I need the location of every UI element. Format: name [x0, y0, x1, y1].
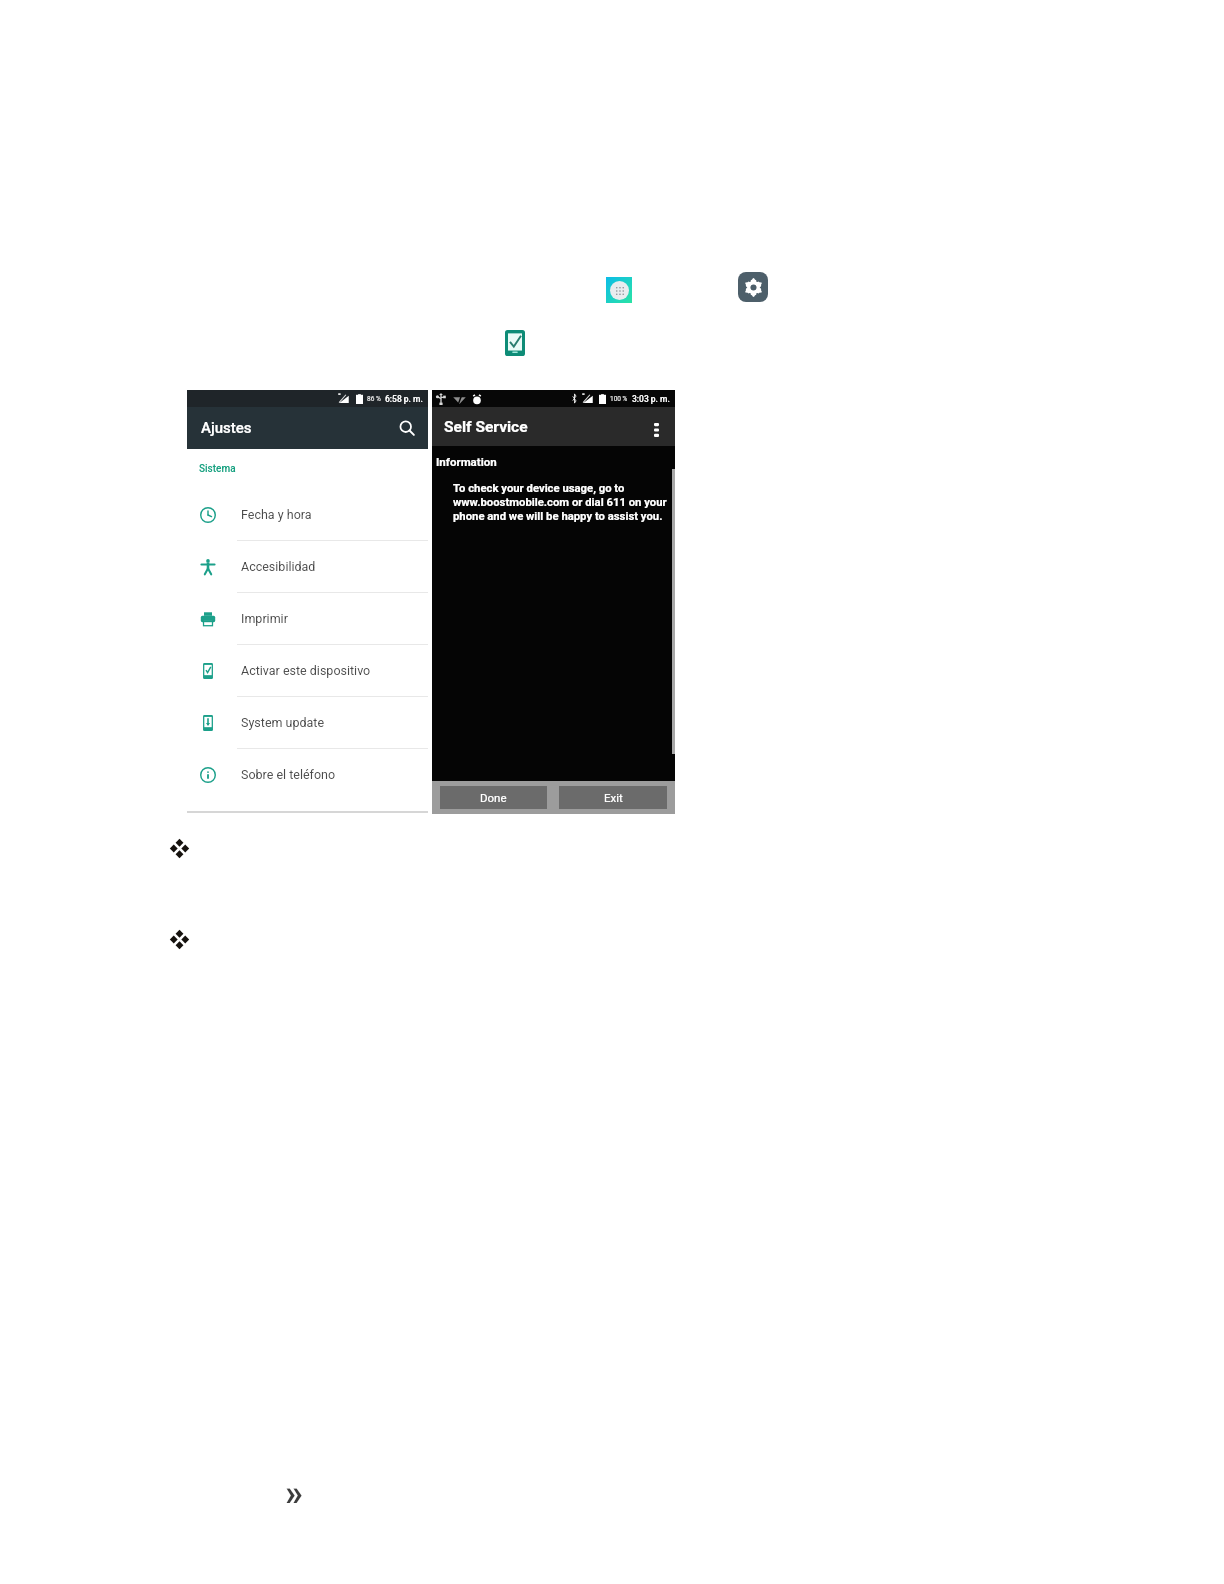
staticText: 3:03 p. m. [632, 394, 670, 404]
button[interactable]: Accesibilidad [187, 541, 428, 593]
button[interactable]: Apps [606, 277, 632, 303]
staticText: To check your device usage, go to www.bo… [453, 482, 667, 523]
staticText: Sistema [199, 463, 236, 475]
staticText: Sobre el teléfono [241, 767, 336, 782]
staticText: Fecha y hora [241, 507, 312, 522]
button[interactable]: Exit [559, 786, 667, 809]
button[interactable]: Sobre el teléfono [187, 749, 428, 800]
button[interactable]: System update [187, 697, 428, 749]
button[interactable]: Ajustes [187, 407, 428, 449]
staticText: Information [436, 455, 497, 468]
staticText: Accesibilidad [241, 559, 316, 574]
button[interactable]: Self Service [432, 407, 675, 446]
staticText: Exit [604, 791, 623, 804]
staticText: Activar este dispositivo [241, 663, 371, 678]
button[interactable]: Fecha y hora [187, 489, 428, 541]
button[interactable]: Done [440, 786, 547, 809]
staticText: Imprimir [241, 611, 288, 626]
button[interactable]: Activar este dispositivo [187, 645, 428, 697]
staticText: Done [480, 791, 507, 804]
staticText: 86 % [367, 395, 381, 403]
staticText: Ajustes [201, 419, 252, 437]
button[interactable]: Activate device [502, 330, 528, 356]
button[interactable]: Imprimir [187, 593, 428, 645]
staticText: 6:58 p. m. [385, 394, 423, 404]
staticText: » [285, 1472, 303, 1514]
staticText: 100 % [610, 395, 628, 403]
staticText: Self Service [444, 418, 528, 436]
button[interactable]: More options [647, 421, 665, 439]
button[interactable]: Settings [738, 272, 768, 302]
button[interactable]: Search [396, 417, 418, 439]
staticText: System update [241, 715, 325, 730]
